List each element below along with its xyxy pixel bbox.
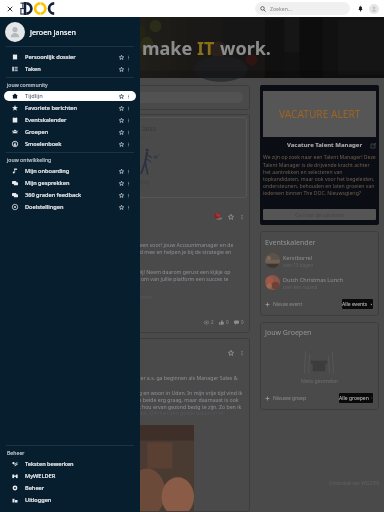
staticText: over één maand bbox=[283, 284, 318, 290]
button[interactable]: 360 graden feedback bbox=[4, 190, 136, 200]
staticText: Alle events bbox=[342, 301, 368, 308]
staticText: jouw ontwikkeling bbox=[7, 156, 52, 163]
staticText: je alles om van jullie platform een succ… bbox=[123, 275, 229, 282]
button[interactable]: Taken bbox=[4, 64, 136, 74]
button[interactable]: Eventskalender bbox=[4, 115, 136, 125]
staticText: Ga naar de vacature bbox=[295, 211, 345, 218]
button[interactable]: Smoelenboek bbox=[4, 139, 136, 149]
staticText: over 15 dagen bbox=[283, 262, 314, 268]
staticText: Kerstborrel bbox=[283, 254, 313, 261]
staticText: Onderdeel van WELDER bbox=[329, 480, 379, 486]
staticText: Beheer bbox=[25, 484, 45, 492]
staticText: IT bbox=[197, 36, 220, 61]
staticText: Uitloggen bbox=[25, 496, 52, 504]
staticText: ng. Ik hou ervan gezond bezig te zijn. Z… bbox=[127, 403, 242, 410]
button[interactable]: Notifications bbox=[354, 2, 367, 15]
staticText: jouw community bbox=[7, 81, 48, 88]
button[interactable]: Zoeken... bbox=[255, 2, 350, 15]
button[interactable]: Tijdlijn bbox=[4, 91, 136, 101]
staticText: Niets gevonden bbox=[301, 378, 338, 385]
button[interactable]: Persoonlijk dossier bbox=[4, 52, 136, 62]
button[interactable]: Groepen bbox=[4, 127, 136, 137]
button[interactable]: Teksten bewerken bbox=[4, 459, 136, 469]
button[interactable]: Mijn onboarding bbox=[4, 166, 136, 176]
staticText: niet alleen voor! jouw Accountmanager en… bbox=[123, 241, 234, 248]
button[interactable]: Beheer bbox=[4, 483, 136, 493]
staticText: Doelstellingen bbox=[25, 203, 64, 211]
staticText: Nieuwe groep bbox=[273, 395, 307, 402]
staticText: Tijdlijn bbox=[25, 92, 43, 100]
staticText: Teksten bewerken bbox=[25, 460, 74, 468]
staticText: cember a.s. ga beginnen als Manager Sale… bbox=[127, 374, 238, 381]
staticText: make bbox=[142, 36, 197, 61]
staticText: 2 bbox=[211, 319, 214, 325]
button[interactable]: Mijn gesprekken bbox=[4, 178, 136, 188]
button[interactable]: Nieuw event bbox=[265, 301, 303, 308]
button[interactable]: Profile bbox=[369, 4, 379, 14]
staticText: Eventskalender bbox=[265, 238, 316, 248]
staticText: Mijn onboarding bbox=[25, 167, 70, 175]
button[interactable]: Dutch Christmas Lunch bbox=[265, 275, 373, 290]
button[interactable]: Jeroen Jansen bbox=[0, 17, 140, 46]
staticText: Mijn gesprekken bbox=[25, 179, 70, 187]
staticText: Groepen bbox=[25, 128, 49, 136]
staticText: ppen wij! Neem daarom gerust een kijkje … bbox=[123, 268, 231, 275]
staticText: ming bbox=[136, 179, 150, 185]
staticText: Vacature Talent Manager bbox=[287, 141, 363, 149]
staticText: Eventskalender bbox=[25, 116, 67, 124]
staticText: MyWELDER bbox=[25, 472, 56, 480]
staticText: Jeroen Jansen bbox=[30, 27, 76, 37]
button[interactable]: Alle groepen bbox=[339, 393, 373, 403]
staticText: 360 graden feedback bbox=[25, 191, 82, 199]
staticText: Beheer bbox=[7, 449, 25, 456]
staticText: maken. Om hier een goede balans in te bbox=[127, 410, 224, 417]
staticText: y jong en woon in Uden. In mijn vrije ti… bbox=[127, 389, 243, 396]
staticText: work. bbox=[220, 36, 271, 61]
button[interactable]: Favoriete berichten bbox=[4, 103, 136, 113]
button[interactable]: Nieuwe groep bbox=[265, 395, 307, 402]
staticText: Alle groepen bbox=[339, 395, 369, 402]
staticText: Smoelenboek bbox=[25, 140, 62, 148]
button[interactable]: Kerstborrel bbox=[265, 253, 373, 268]
staticText: r dag » bbox=[136, 134, 153, 141]
staticText: Dutch Christmas Lunch bbox=[283, 276, 344, 283]
staticText: Lees meer bbox=[123, 294, 153, 301]
staticText: Favoriete berichten bbox=[25, 104, 78, 112]
staticText: Zoeken... bbox=[270, 5, 293, 12]
staticText: We zijn op zoek naar een Talent Manager!… bbox=[263, 154, 376, 196]
staticText: Taken bbox=[25, 65, 41, 73]
staticText: v. 2023 bbox=[136, 125, 157, 133]
staticText: de hand mee en helpen je bij de strategi… bbox=[123, 248, 232, 255]
staticText: VACATURE ALERT bbox=[279, 107, 361, 121]
staticText: 0 bbox=[241, 319, 244, 325]
button[interactable]: Doelstellingen bbox=[4, 202, 136, 212]
staticText: Persoonlijk dossier bbox=[25, 53, 76, 61]
staticText: 0 bbox=[226, 319, 229, 325]
button[interactable]: Uitloggen bbox=[4, 495, 136, 505]
staticText: en we beide erg graag, maar daarnaast is… bbox=[127, 396, 239, 403]
staticText: Nieuw event bbox=[273, 301, 303, 308]
button[interactable]: MyWELDER bbox=[4, 471, 136, 481]
staticText: Jouw Groepen bbox=[265, 328, 312, 338]
button[interactable]: Alle events bbox=[342, 299, 373, 309]
button[interactable]: Close menu bbox=[5, 4, 15, 14]
